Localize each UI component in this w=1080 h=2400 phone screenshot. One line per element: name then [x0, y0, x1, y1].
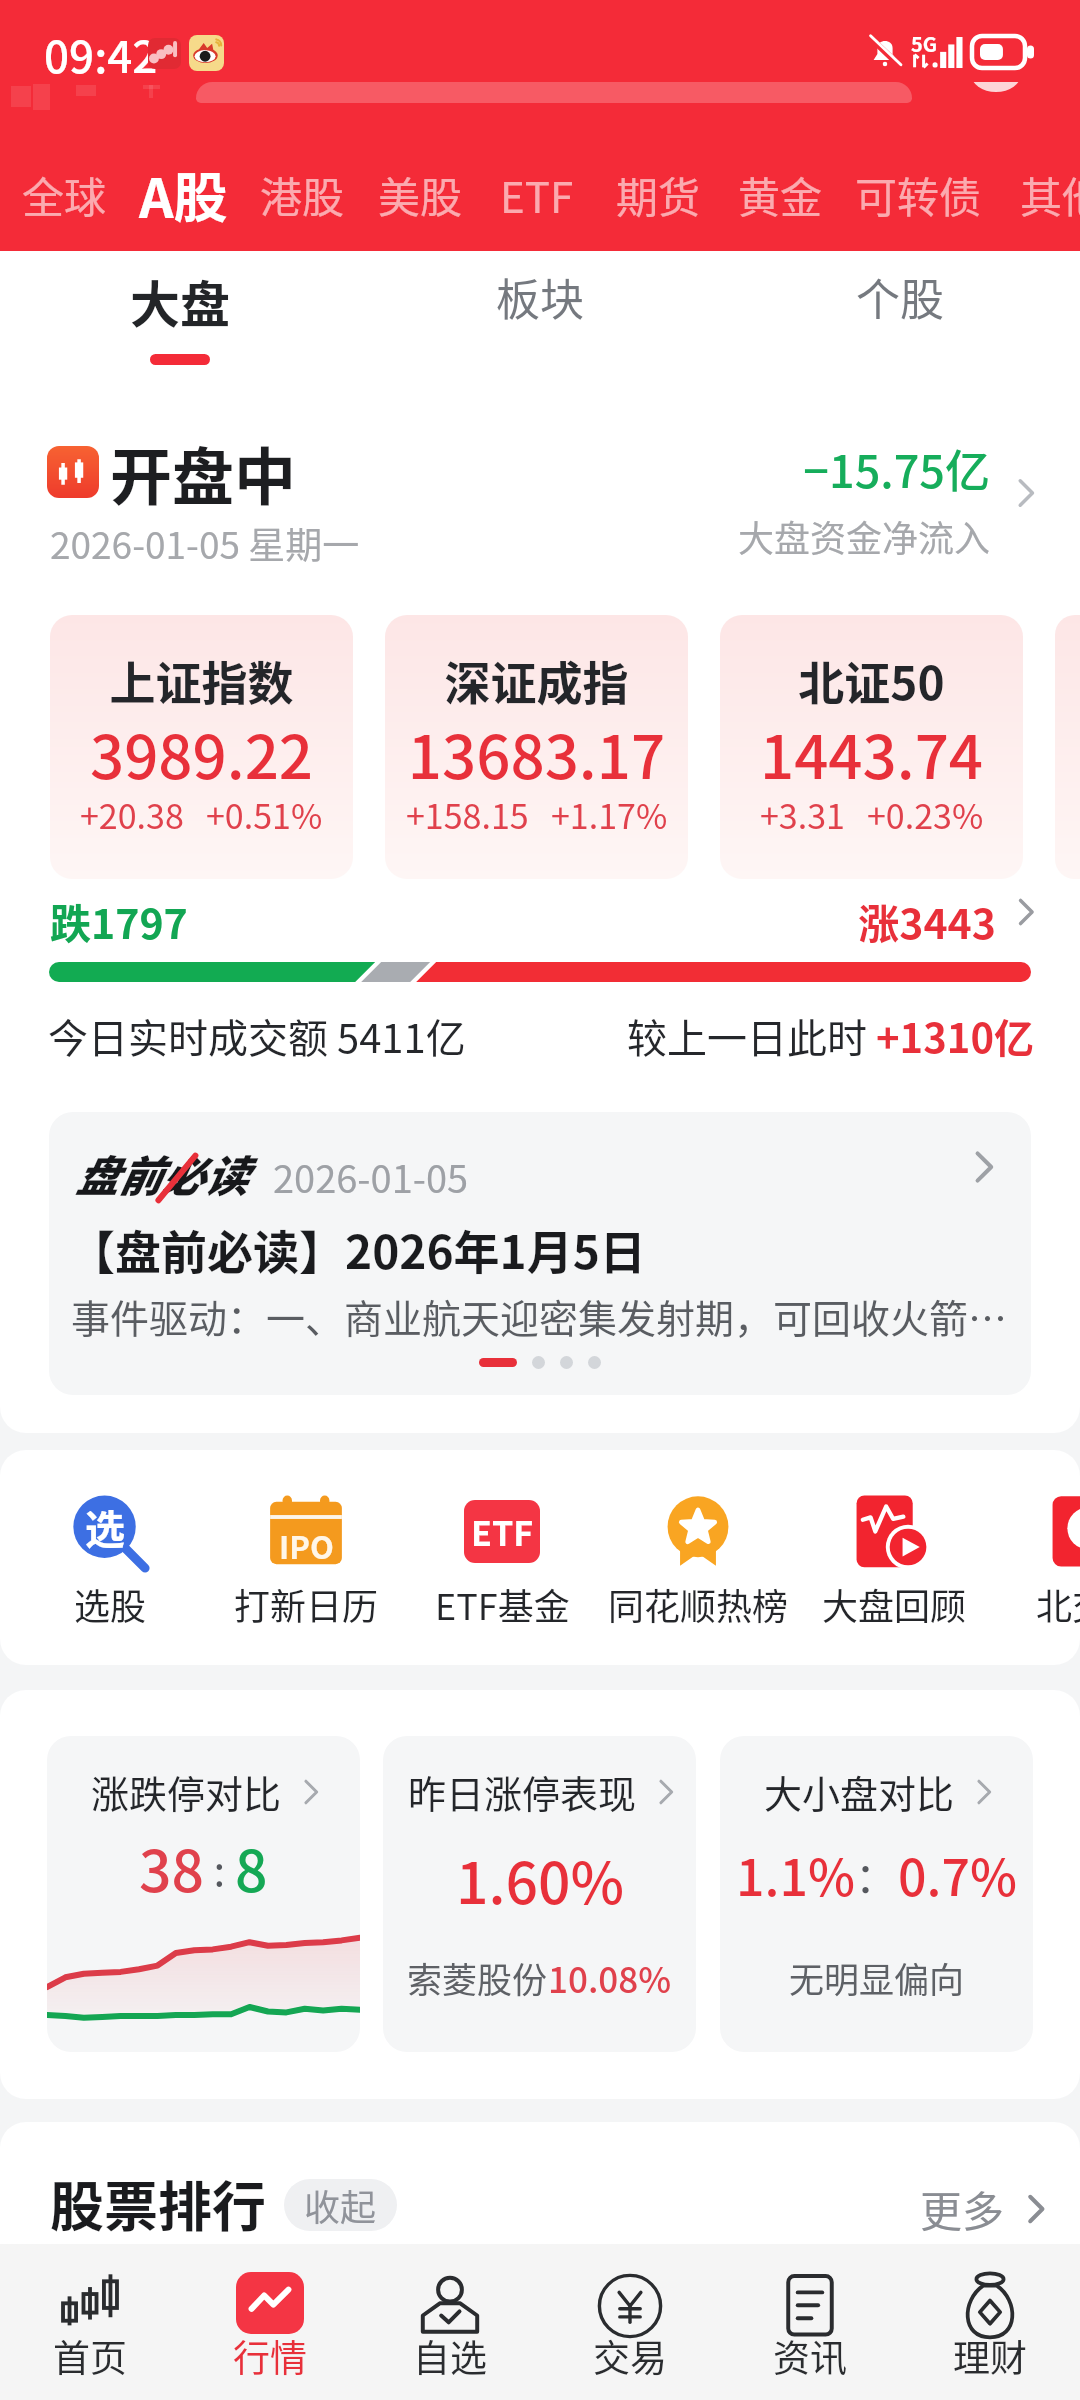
staticText: 理财	[953, 2329, 1027, 2383]
button[interactable]: 大盘回顾	[796, 1450, 992, 1665]
button[interactable]: 交易	[540, 2244, 720, 2400]
staticText: 北交所	[1036, 1578, 1080, 1630]
staticText: 10.08%	[548, 1952, 672, 2003]
button[interactable]: 理财	[900, 2244, 1080, 2400]
staticText: 板块	[496, 265, 584, 329]
staticText: 可转债	[855, 164, 982, 225]
staticText: 大小盘对比	[764, 1764, 955, 1819]
button[interactable]: 港股	[260, 137, 345, 251]
button[interactable]: 可转债	[855, 137, 982, 251]
staticText: A股	[139, 155, 228, 233]
button[interactable]: ETF	[404, 1450, 600, 1665]
staticText: 跌1797	[50, 891, 188, 950]
button[interactable]: 资讯	[720, 2244, 900, 2400]
button[interactable]: 行情	[180, 2244, 360, 2400]
staticText: 8	[235, 1826, 268, 1909]
staticText: 09:42	[44, 22, 158, 86]
staticText: 上证指数	[50, 647, 353, 714]
staticText: +158.15	[406, 790, 529, 839]
staticText: IPO	[279, 1523, 334, 1568]
staticText: 索菱股份	[407, 1952, 548, 2003]
button[interactable]: 盘前必读	[49, 1112, 1031, 1395]
staticText: 1.1%	[736, 1838, 855, 1910]
staticText: 涨3443	[800, 891, 996, 950]
button[interactable]: 北交所	[992, 1450, 1080, 1665]
button[interactable]: 昨日涨停表现	[383, 1736, 696, 2052]
staticText: 选	[85, 1498, 125, 1556]
button[interactable]: 上证指数	[50, 615, 353, 879]
button[interactable]: 期货	[616, 137, 701, 251]
staticText: 北证50	[720, 647, 1023, 714]
staticText: 首页	[53, 2329, 127, 2383]
button[interactable]: 北证50	[720, 615, 1023, 879]
button[interactable]: 大盘	[0, 251, 360, 400]
staticText: 【盘前必读】2026年1月5日	[69, 1216, 646, 1283]
button[interactable]: 同花顺热榜	[600, 1450, 796, 1665]
staticText: +1310亿	[876, 1007, 1034, 1065]
staticText: 其他	[1020, 164, 1080, 225]
staticText: ETF	[471, 1507, 534, 1556]
staticText: 开盘中	[110, 428, 297, 518]
button[interactable]: 选	[12, 1450, 208, 1665]
staticText: +3.31	[760, 790, 845, 839]
staticText: 3989.22	[50, 709, 353, 796]
staticText: 行情	[233, 2329, 307, 2383]
button[interactable]: 其他	[1020, 137, 1080, 251]
staticText: +0.51%	[206, 790, 323, 839]
staticText: 2026-01-05	[273, 1149, 469, 1204]
button[interactable]: 大小盘对比	[720, 1736, 1033, 2052]
staticText: 选股	[74, 1578, 147, 1630]
staticText: 今日实时成交额 5411亿	[48, 1007, 466, 1065]
staticText: ETF基金	[435, 1578, 570, 1630]
staticText: 黄金	[738, 164, 823, 225]
staticText: +0.23%	[867, 790, 984, 839]
staticText: ：	[855, 1844, 898, 1905]
button[interactable]: 跌1797	[0, 880, 1080, 1000]
staticText: +1.17%	[551, 790, 668, 839]
staticText: :	[204, 1837, 235, 1898]
staticText: 5G	[911, 29, 938, 58]
staticText: −15.75亿	[740, 436, 990, 501]
staticText: 0.7%	[898, 1838, 1017, 1910]
staticText: 2026-01-05 星期一	[50, 516, 360, 570]
staticText: 盘前必读	[75, 1142, 247, 1204]
staticText: 大盘回顾	[822, 1578, 967, 1630]
staticText: 收起	[304, 2179, 377, 2231]
staticText: 1443.74	[720, 709, 1023, 796]
button[interactable]: 自选	[360, 2244, 540, 2400]
staticText: +20.38	[80, 790, 184, 839]
button[interactable]: 涨跌停对比	[47, 1736, 360, 2052]
button[interactable]: 首页	[0, 2244, 180, 2400]
staticText: 资讯	[773, 2329, 847, 2383]
button[interactable]: 美股	[378, 137, 463, 251]
staticText: 个股	[856, 265, 944, 329]
staticText: 昨日涨停表现	[408, 1764, 637, 1819]
staticText: 38	[139, 1826, 204, 1909]
button[interactable]: 收起	[284, 2179, 397, 2231]
staticText: 同花顺热榜	[608, 1578, 789, 1630]
staticText: 打新日历	[234, 1578, 379, 1630]
staticText: 深证成指	[385, 647, 688, 714]
staticText: 13683.17	[385, 709, 688, 796]
button[interactable]: 深证成指	[385, 615, 688, 879]
staticText: 无明显偏向	[789, 1952, 965, 2003]
staticText: 期货	[616, 164, 701, 225]
staticText: 股票排行	[50, 2164, 266, 2242]
button[interactable]: 板块	[360, 251, 720, 400]
staticText: 美股	[378, 164, 463, 225]
button[interactable]: 个股	[720, 251, 1080, 400]
button[interactable]: 开盘中	[0, 400, 1080, 600]
staticText: ETF	[500, 164, 574, 225]
staticText: 大盘资金净流入	[725, 510, 1003, 562]
staticText: 港股	[260, 164, 345, 225]
button[interactable]: A股	[139, 137, 228, 251]
button[interactable]: 黄金	[738, 137, 823, 251]
button[interactable]: 全球	[22, 137, 107, 251]
button[interactable]: 更多	[920, 2178, 1053, 2239]
staticText: 自选	[413, 2329, 487, 2383]
button[interactable]: IPO	[208, 1450, 404, 1665]
staticText: 大盘	[130, 265, 230, 337]
button[interactable]: ETF	[500, 137, 574, 251]
staticText: 事件驱动：一、商业航天迎密集发射期，可回收火箭与卫…	[71, 1288, 1023, 1344]
staticText: 1.60%	[456, 1838, 624, 1921]
